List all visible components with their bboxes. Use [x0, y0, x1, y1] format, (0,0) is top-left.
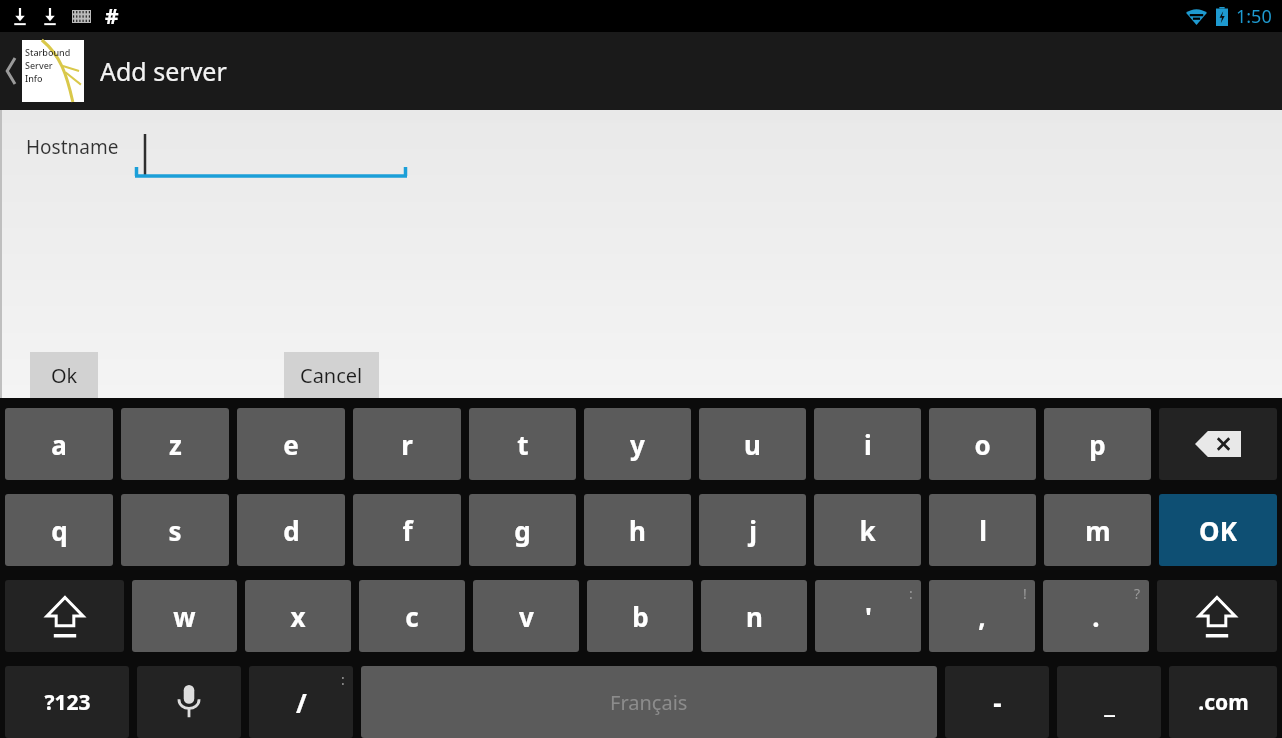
button[interactable]: , — [929, 580, 1035, 652]
button[interactable]: q — [5, 494, 113, 566]
button[interactable]: f — [353, 494, 461, 566]
staticText: Ok — [51, 362, 78, 389]
button[interactable]: u — [699, 408, 806, 480]
button[interactable]: b — [587, 580, 693, 652]
staticText: i — [864, 427, 872, 462]
staticText: q — [51, 513, 68, 548]
staticText: / — [296, 685, 307, 720]
staticText: t — [517, 427, 529, 462]
button[interactable]: Ok — [30, 352, 98, 398]
button[interactable]: r — [353, 408, 461, 480]
button[interactable]: v — [473, 580, 579, 652]
staticText: . — [1092, 599, 1100, 634]
button[interactable]: Français — [361, 666, 937, 738]
button[interactable]: - — [945, 666, 1049, 738]
staticText: Info — [25, 72, 43, 84]
staticText: # — [105, 2, 119, 31]
staticText: .com — [1198, 688, 1249, 717]
staticText: v — [519, 599, 534, 634]
button[interactable]: Shift — [1157, 580, 1277, 652]
button[interactable]: Shift — [5, 580, 124, 652]
button[interactable]: a — [5, 408, 113, 480]
staticText: o — [974, 427, 991, 462]
button[interactable]: p — [1044, 408, 1151, 480]
staticText: - — [993, 685, 1002, 720]
staticText: n — [746, 599, 763, 634]
button[interactable]: o — [929, 408, 1036, 480]
button[interactable]: e — [237, 408, 345, 480]
staticText: l — [979, 513, 987, 548]
button[interactable]: . — [1043, 580, 1149, 652]
button[interactable]: c — [359, 580, 465, 652]
staticText: j — [749, 513, 757, 548]
staticText: : — [909, 584, 913, 603]
button[interactable]: z — [121, 408, 229, 480]
staticText: e — [283, 427, 299, 462]
button[interactable]: h — [584, 494, 691, 566]
button[interactable]: Navigate up — [0, 32, 88, 110]
button[interactable]: l — [929, 494, 1036, 566]
staticText: OK — [1199, 513, 1237, 548]
button[interactable]: Delete — [1159, 408, 1277, 480]
staticText: r — [401, 427, 413, 462]
staticText: 1:50 — [1236, 4, 1272, 29]
button[interactable]: d — [237, 494, 345, 566]
button[interactable]: y — [584, 408, 691, 480]
staticText: u — [744, 427, 761, 462]
staticText: _ — [1104, 685, 1115, 720]
staticText: s — [168, 513, 182, 548]
button[interactable]: .com — [1169, 666, 1277, 738]
staticText: f — [402, 513, 413, 548]
button[interactable]: ' — [815, 580, 921, 652]
staticText: p — [1089, 427, 1106, 462]
button[interactable]: Cancel — [284, 352, 379, 398]
button[interactable]: j — [699, 494, 806, 566]
button[interactable]: OK — [1159, 494, 1277, 566]
staticText: z — [169, 427, 182, 462]
staticText: Starbound — [25, 46, 71, 58]
staticText: Français — [610, 689, 688, 716]
staticText: x — [290, 599, 306, 634]
button[interactable]: i — [814, 408, 921, 480]
staticText: a — [51, 427, 67, 462]
staticText: , — [978, 599, 986, 634]
staticText: ' — [865, 599, 872, 634]
staticText: m — [1085, 513, 1111, 548]
staticText: w — [173, 599, 196, 634]
staticText: Server — [25, 59, 53, 71]
button[interactable]: k — [814, 494, 921, 566]
staticText: g — [514, 513, 531, 548]
button[interactable]: s — [121, 494, 229, 566]
button[interactable] — [135, 132, 407, 184]
button[interactable]: Voice input — [137, 666, 241, 738]
button[interactable]: g — [469, 494, 576, 566]
staticText: b — [632, 599, 649, 634]
button[interactable]: / — [249, 666, 353, 738]
staticText: : — [341, 670, 345, 689]
staticText: d — [283, 513, 300, 548]
staticText: ! — [1023, 584, 1027, 603]
button[interactable]: n — [701, 580, 807, 652]
staticText: c — [405, 599, 419, 634]
button[interactable]: ?123 — [5, 666, 129, 738]
staticText: y — [630, 427, 645, 462]
button[interactable]: _ — [1057, 666, 1161, 738]
staticText: ?123 — [44, 688, 91, 717]
button[interactable]: t — [469, 408, 576, 480]
button[interactable]: m — [1044, 494, 1151, 566]
staticText: Add server — [100, 54, 227, 88]
staticText: ? — [1134, 584, 1141, 603]
staticText: Cancel — [300, 362, 363, 389]
button[interactable]: x — [245, 580, 351, 652]
staticText: Hostname — [26, 134, 119, 160]
button[interactable]: w — [132, 580, 237, 652]
staticText: h — [629, 513, 646, 548]
staticText: k — [859, 513, 876, 548]
